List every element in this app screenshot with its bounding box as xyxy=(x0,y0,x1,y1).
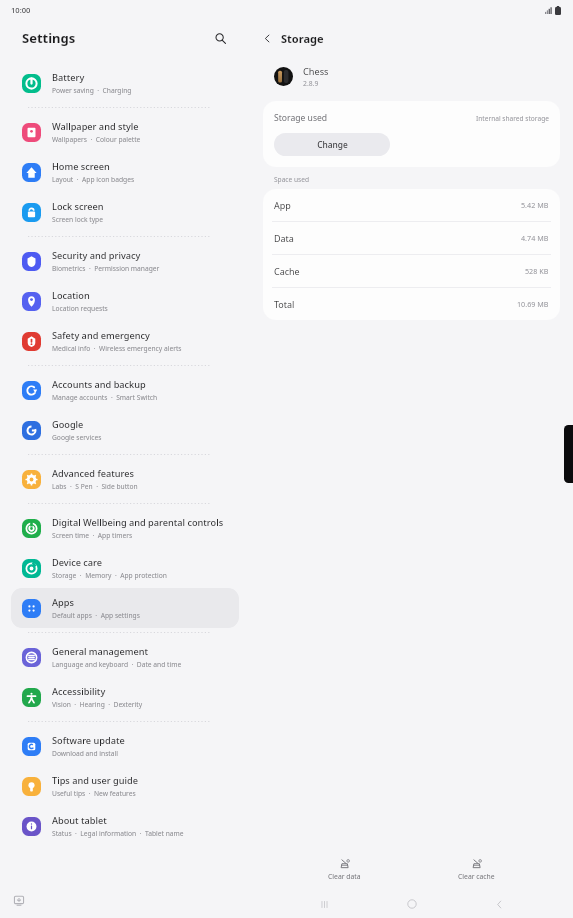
staticText: Layout · App icon badges xyxy=(52,175,135,184)
staticText: Storage used xyxy=(274,112,328,124)
staticText: Space used xyxy=(274,175,309,184)
staticText: Accounts and backup xyxy=(52,378,146,391)
staticText: 4.74 MB xyxy=(521,233,549,243)
staticText: Language and keyboard · Date and time xyxy=(52,660,182,669)
staticText: Biometrics · Permission manager xyxy=(52,264,160,273)
staticText: 2.8.9 xyxy=(303,79,319,88)
button[interactable]: Software update xyxy=(11,726,239,766)
staticText: Wallpapers · Colour palette xyxy=(52,135,141,144)
staticText: Digital Wellbeing and parental controls xyxy=(52,516,224,529)
staticText: Location requests xyxy=(52,304,108,313)
staticText: Internal shared storage xyxy=(476,114,549,123)
staticText: Clear cache xyxy=(458,872,495,881)
button[interactable]: Tips and user guide xyxy=(11,766,239,806)
button[interactable]: Chess xyxy=(274,65,573,88)
button[interactable]: Battery xyxy=(11,63,239,103)
staticText: Advanced features xyxy=(52,467,134,480)
staticText: General management xyxy=(52,645,149,658)
staticText: Software update xyxy=(52,734,125,747)
staticText: Clear data xyxy=(328,872,361,881)
staticText: Storage xyxy=(281,31,324,46)
staticText: Lock screen xyxy=(52,200,104,213)
staticText: Download and install xyxy=(52,749,118,758)
button[interactable]: Apps xyxy=(11,588,239,628)
button[interactable]: Google xyxy=(11,410,239,450)
button[interactable]: Accessibility xyxy=(11,677,239,717)
staticText: Total xyxy=(274,298,295,310)
staticText: Change xyxy=(317,139,348,150)
staticText: Settings xyxy=(22,29,76,47)
staticText: Home screen xyxy=(52,160,110,173)
button[interactable]: Recents xyxy=(311,891,337,917)
staticText: Tips and user guide xyxy=(52,774,138,787)
button[interactable]: App xyxy=(263,189,560,221)
staticText: Chess xyxy=(303,65,329,78)
button[interactable]: Device care xyxy=(11,548,239,588)
button[interactable]: Accounts and backup xyxy=(11,370,239,410)
staticText: Device care xyxy=(52,556,103,569)
button[interactable]: Safety and emergency xyxy=(11,321,239,361)
staticText: Google services xyxy=(52,433,102,442)
staticText: 10.69 MB xyxy=(517,299,549,309)
staticText: Battery xyxy=(52,71,85,84)
button[interactable]: Home screen xyxy=(11,152,239,192)
staticText: Screen lock type xyxy=(52,215,103,224)
staticText: 10:00 xyxy=(11,5,31,15)
button[interactable]: Wallpaper and style xyxy=(11,112,239,152)
button[interactable]: Clear data xyxy=(310,854,379,884)
staticText: Medical info · Wireless emergency alerts xyxy=(52,344,182,353)
staticText: Security and privacy xyxy=(52,249,141,262)
staticText: Google xyxy=(52,418,84,431)
staticText: Cache xyxy=(274,265,300,277)
staticText: Labs · S Pen · Side button xyxy=(52,482,138,491)
button[interactable]: Edge panel xyxy=(564,425,573,483)
staticText: Storage · Memory · App protection xyxy=(52,571,167,580)
staticText: Vision · Hearing · Dexterity xyxy=(52,700,143,709)
button[interactable]: Home xyxy=(399,891,425,917)
button[interactable]: Advanced features xyxy=(11,459,239,499)
staticText: About tablet xyxy=(52,814,107,827)
button[interactable]: Location xyxy=(11,281,239,321)
staticText: Default apps · App settings xyxy=(52,611,140,620)
button[interactable]: Data xyxy=(263,222,560,254)
staticText: App xyxy=(274,199,291,211)
staticText: Safety and emergency xyxy=(52,329,150,342)
button[interactable]: About tablet xyxy=(11,806,239,846)
staticText: Apps xyxy=(52,596,74,609)
button[interactable]: Back xyxy=(486,891,512,917)
button[interactable]: Security and privacy xyxy=(11,241,239,281)
staticText: Location xyxy=(52,289,90,302)
button[interactable]: Total xyxy=(263,288,560,320)
button[interactable]: Lock screen xyxy=(11,192,239,232)
button[interactable]: Change xyxy=(274,133,390,156)
staticText: Wallpaper and style xyxy=(52,120,139,133)
button[interactable]: General management xyxy=(11,637,239,677)
staticText: Accessibility xyxy=(52,685,106,698)
staticText: Power saving · Charging xyxy=(52,86,132,95)
button[interactable]: Clear cache xyxy=(440,854,513,884)
staticText: Screen time · App timers xyxy=(52,531,133,540)
button[interactable]: Digital Wellbeing and parental controls xyxy=(11,508,239,548)
staticText: Data xyxy=(274,232,294,244)
staticText: Manage accounts · Smart Switch xyxy=(52,393,158,402)
button[interactable]: Cache xyxy=(263,255,560,287)
staticText: 528 KB xyxy=(525,266,549,276)
staticText: Status · Legal information · Tablet name xyxy=(52,829,184,838)
staticText: Useful tips · New features xyxy=(52,789,136,798)
button[interactable]: Back xyxy=(256,27,278,49)
staticText: 5.42 MB xyxy=(521,200,549,210)
button[interactable]: Search xyxy=(208,26,232,50)
